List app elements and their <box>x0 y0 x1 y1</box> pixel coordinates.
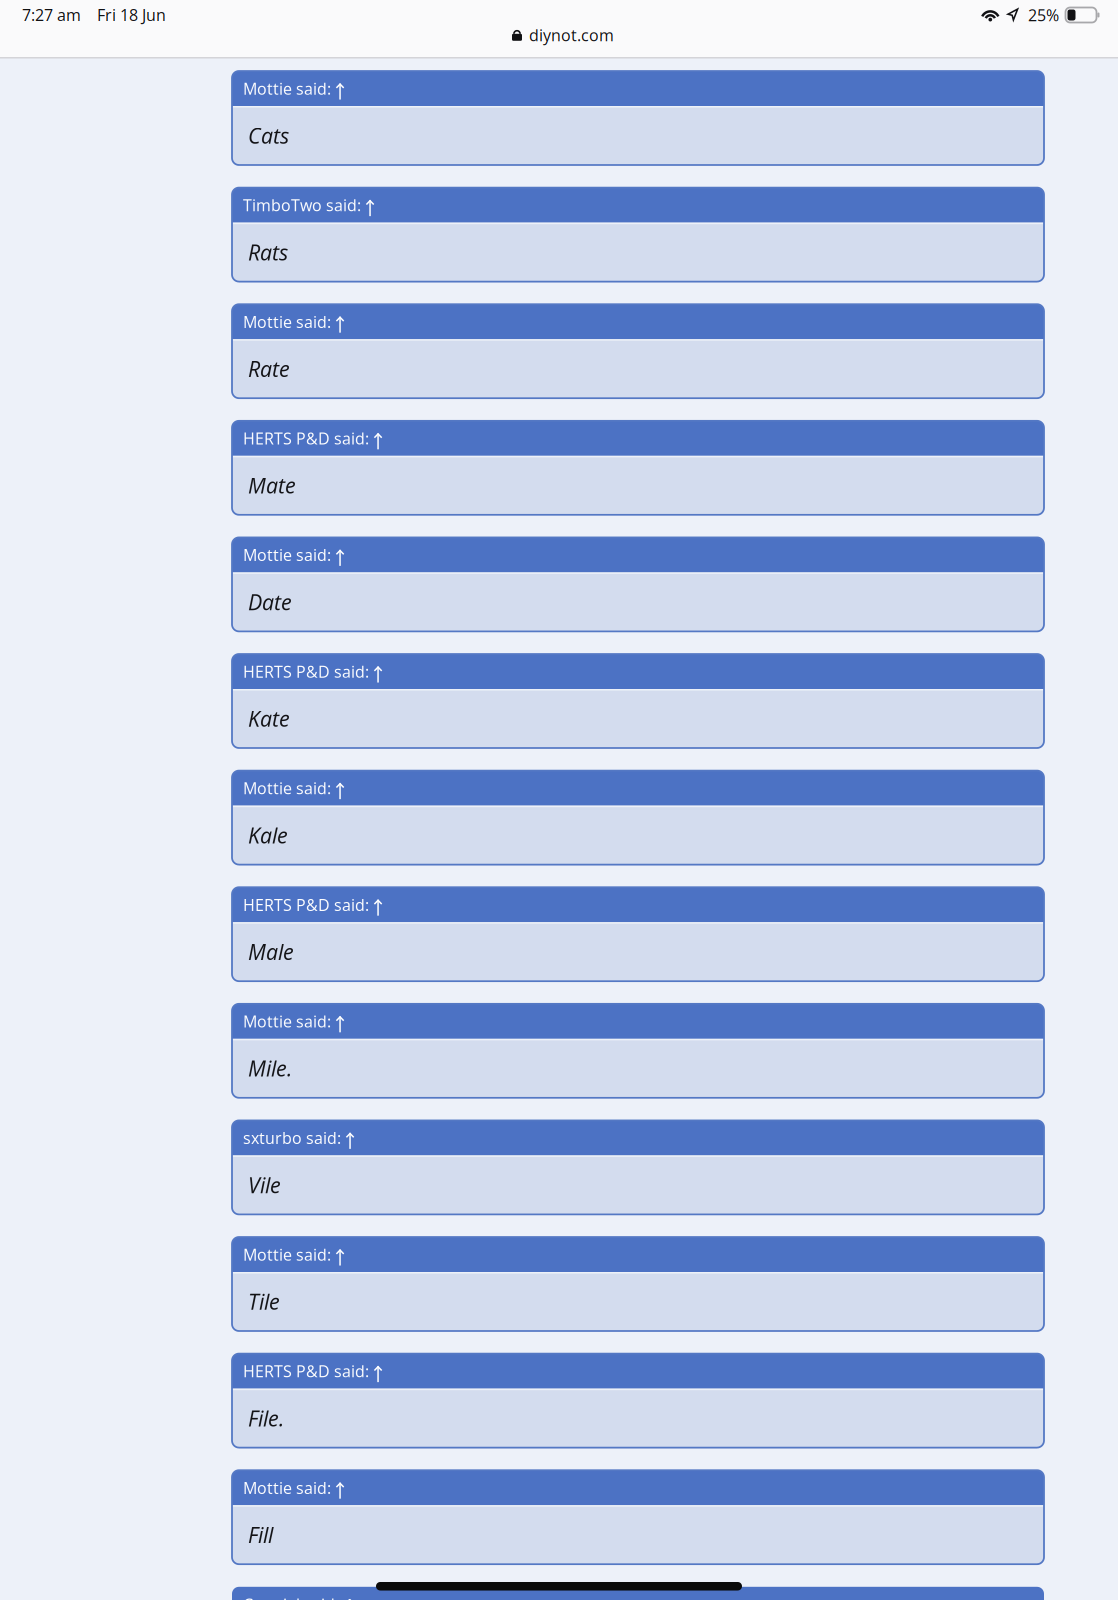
staticText: Rate <box>248 354 290 383</box>
staticText: Rats <box>248 238 288 267</box>
button[interactable]: TimboTwo said: <box>232 188 1044 282</box>
staticText: Mottie said: <box>243 777 331 799</box>
button[interactable]: Mottie said: <box>232 537 1044 631</box>
staticText: Mottie said: <box>243 1477 331 1499</box>
staticText: Mottie said: <box>243 1244 331 1265</box>
button[interactable]: Mottie said: <box>232 771 1044 865</box>
staticText: 25% <box>1028 4 1059 26</box>
button[interactable]: Mottie said: <box>232 304 1044 398</box>
button[interactable]: Mottie said: <box>232 71 1044 165</box>
staticText: Date <box>248 587 292 616</box>
staticText: Kale <box>248 821 288 850</box>
staticText: Mottie said: <box>243 78 331 99</box>
staticText: File. <box>248 1404 284 1433</box>
button[interactable]: Mottie said: <box>232 1470 1044 1564</box>
staticText: Mottie said: <box>243 311 331 333</box>
staticText: Fill <box>248 1520 273 1549</box>
staticText: HERTS P&D said: <box>243 661 369 682</box>
staticText: Male <box>248 937 294 966</box>
button[interactable]: HERTS P&D said: <box>232 654 1044 748</box>
button[interactable]: diynot.com <box>512 20 614 50</box>
staticText: Conniel said: ↑ <box>243 1593 356 1600</box>
button[interactable]: Mottie said: <box>232 1237 1044 1331</box>
staticText: HERTS P&D said: <box>243 427 369 449</box>
staticText: diynot.com <box>529 24 614 46</box>
staticText: Tile <box>248 1287 280 1316</box>
staticText: Mottie said: <box>243 1010 331 1032</box>
staticText: 7:27 am <box>22 4 81 26</box>
button[interactable]: Mottie said: <box>232 1004 1044 1098</box>
button[interactable]: HERTS P&D said: <box>232 421 1044 515</box>
button[interactable]: Conniel said: ↑ <box>232 1587 1044 1600</box>
staticText: Kate <box>248 704 290 733</box>
staticText: Cats <box>248 121 289 150</box>
staticText: HERTS P&D said: <box>243 1360 369 1382</box>
staticText: Mottie said: <box>243 544 331 566</box>
staticText: Mate <box>248 471 296 500</box>
staticText: Mile. <box>248 1054 292 1083</box>
staticText: TimboTwo said: <box>243 194 361 216</box>
staticText: Fri 18 Jun <box>97 4 166 26</box>
button[interactable]: HERTS P&D said: <box>232 887 1044 981</box>
staticText: HERTS P&D said: <box>243 894 369 916</box>
staticText: Vile <box>248 1170 281 1199</box>
staticText: sxturbo said: <box>243 1127 341 1149</box>
button[interactable]: HERTS P&D said: <box>232 1354 1044 1448</box>
button[interactable]: sxturbo said: <box>232 1120 1044 1214</box>
